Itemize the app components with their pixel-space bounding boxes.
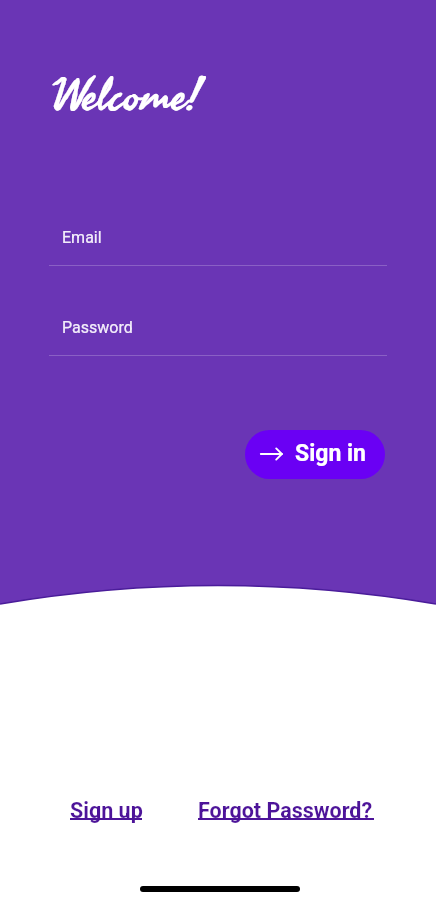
staticText: Welcome! (52, 54, 201, 135)
button[interactable]: Email (49, 214, 387, 275)
button[interactable]: Sign up (70, 798, 143, 823)
button[interactable]: Forgot Password? (198, 798, 374, 823)
staticText: Forgot Password? (198, 798, 373, 823)
staticText: Welcome! (53, 54, 202, 135)
staticText: Email (62, 228, 102, 247)
staticText: Password (62, 318, 133, 337)
staticText: Sign in (295, 440, 366, 467)
button[interactable]: Sign in (245, 430, 385, 479)
staticText: Sign up (70, 798, 143, 823)
button[interactable]: Password (49, 304, 387, 365)
other: Sign in (260, 445, 283, 463)
